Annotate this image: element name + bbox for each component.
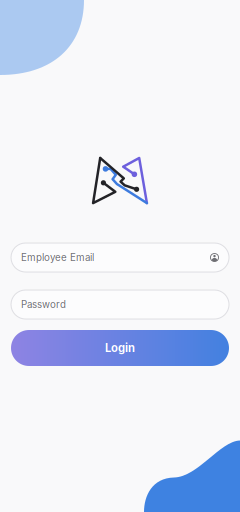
staticText: Password bbox=[21, 299, 66, 310]
staticText: Employee Email bbox=[21, 252, 94, 263]
button[interactable]: Login bbox=[11, 330, 229, 366]
staticText: Login bbox=[105, 341, 135, 355]
